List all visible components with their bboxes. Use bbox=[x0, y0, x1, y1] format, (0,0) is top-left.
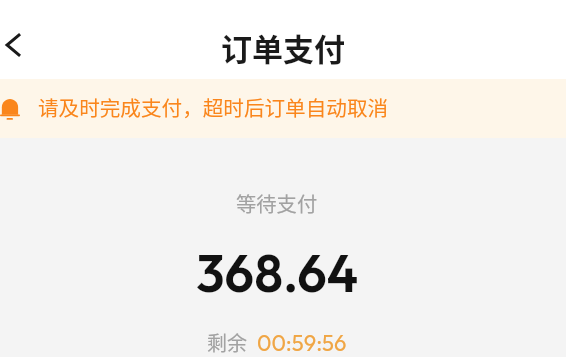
staticText: 请及时完成支付，超时后订单自动取消 bbox=[38, 92, 389, 122]
staticText: 剩余 bbox=[207, 328, 247, 357]
staticText: 368.64 bbox=[196, 240, 359, 306]
button[interactable]: Back bbox=[0, 22, 34, 68]
staticText: 订单支付 bbox=[221, 25, 345, 70]
staticText: 00:59:56 bbox=[257, 329, 347, 357]
staticText: 等待支付 bbox=[236, 188, 318, 217]
